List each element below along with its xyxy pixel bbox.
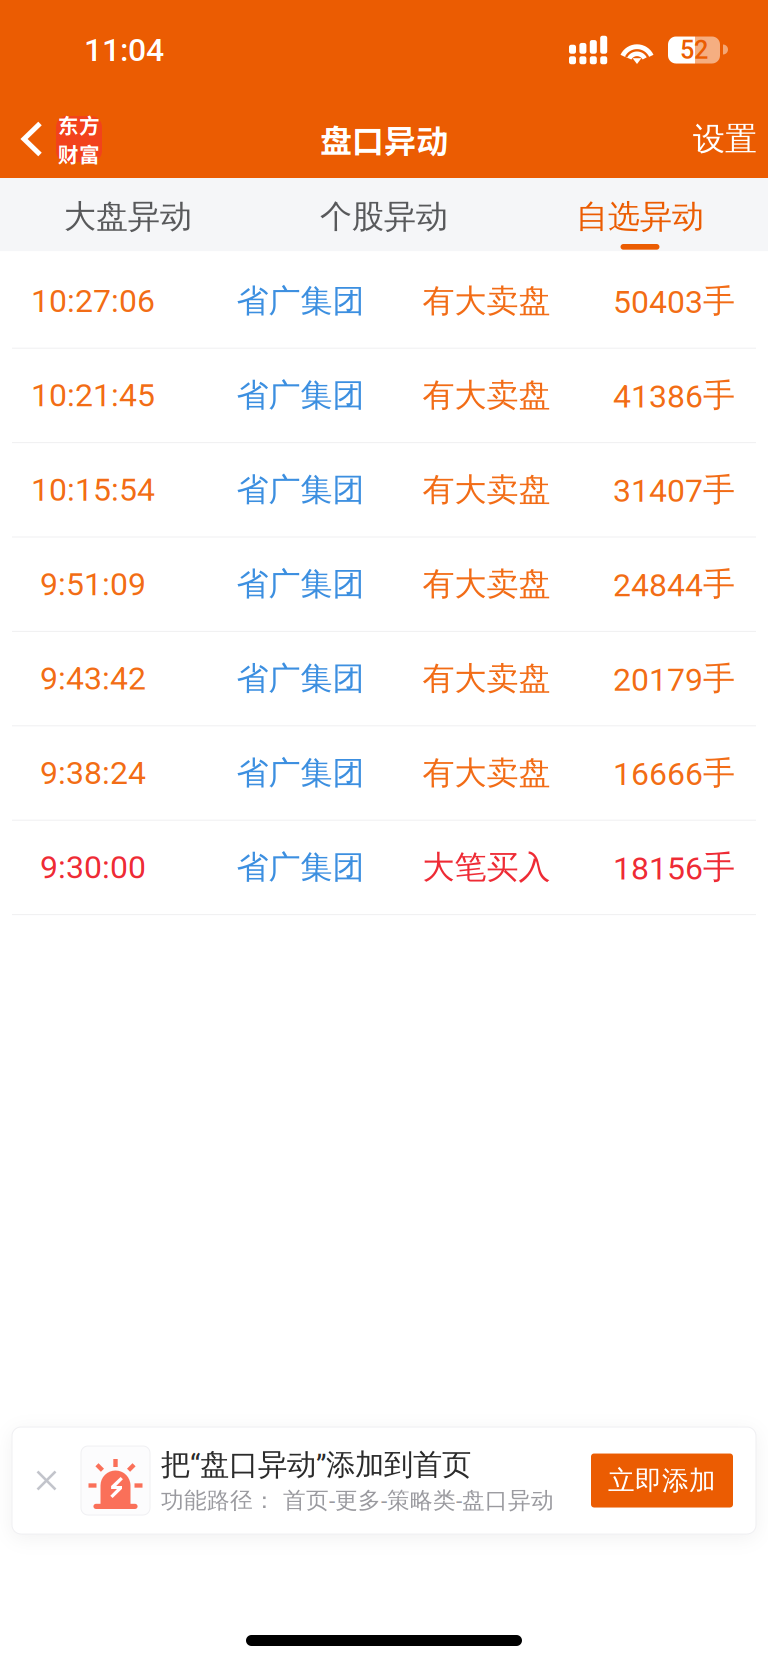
staticText: 个股异动 [320,196,448,237]
button[interactable]: 自选异动 [512,178,768,251]
button[interactable]: 大盘异动 [0,178,256,251]
staticText: 9:43:42 [40,660,146,697]
button[interactable]: 9:51:09 [0,537,768,632]
button[interactable]: 10:21:45 [0,349,768,443]
button[interactable]: 个股异动 [256,178,512,251]
staticText: 18156手 [613,847,735,887]
button[interactable]: 9:38:24 [0,726,768,821]
staticText: 省广集团 [236,470,364,510]
staticText: 设置 [693,119,757,159]
staticText: 有大卖盘 [422,753,550,793]
staticText: 大笔买入 [422,847,550,887]
button[interactable]: 10:27:06 [0,254,768,349]
staticText: 20179手 [613,658,735,699]
staticText: 省广集团 [236,658,364,699]
staticText: 50403手 [613,281,735,321]
staticText: 东方 [58,110,100,139]
button[interactable]: 10:15:54 [0,443,768,537]
staticText: 省广集团 [236,375,364,415]
staticText: 10:21:45 [31,377,155,414]
staticText: 有大卖盘 [422,658,550,699]
staticText: 52 [680,35,708,65]
staticText: 财富 [58,138,100,168]
staticText: 自选异动 [576,196,704,237]
staticText: 省广集团 [236,847,364,887]
staticText: 16666手 [613,753,735,793]
staticText: 大盘异动 [64,196,192,237]
staticText: 9:30:00 [40,849,146,886]
staticText: 省广集团 [236,753,364,793]
staticText: 9:51:09 [40,565,146,603]
button[interactable]: 9:43:42 [0,632,768,726]
staticText: 有大卖盘 [422,564,550,604]
staticText: 9:38:24 [40,754,146,792]
staticText: 省广集团 [236,281,364,321]
button[interactable]: 9:30:00 [0,821,768,915]
staticText: 功能路径： 首页-更多-策略类-盘口异动 [161,1486,554,1515]
staticText: 盘口异动 [320,116,448,162]
staticText: 24844手 [613,564,735,604]
staticText: 有大卖盘 [422,281,550,321]
staticText: 省广集团 [236,564,364,604]
staticText: 10:27:06 [31,282,155,320]
button[interactable]: 立即添加 [591,1453,733,1507]
staticText: 10:15:54 [31,471,155,509]
button[interactable]: 设置 [669,100,768,178]
button[interactable]: 关闭 [12,1427,81,1534]
staticText: 有大卖盘 [422,470,550,510]
button[interactable]: 返回东方财富 [0,100,112,178]
staticText: 有大卖盘 [422,375,550,415]
staticText: 立即添加 [608,1464,716,1497]
staticText: 41386手 [613,375,735,415]
staticText: 11:04 [84,31,164,69]
staticText: 把“盘口异动”添加到首页 [161,1446,471,1483]
staticText: 31407手 [613,470,735,510]
